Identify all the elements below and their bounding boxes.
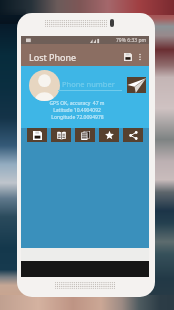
staticText: 6:33 pm [126, 37, 147, 44]
button[interactable]: Save [27, 128, 47, 142]
staticText: Phone number [62, 79, 115, 89]
button[interactable]: Send [127, 77, 146, 93]
button[interactable]: History [75, 128, 95, 142]
button[interactable]: Contact photo [29, 70, 60, 101]
button[interactable]: Share [123, 128, 143, 142]
button[interactable]: Map [51, 128, 71, 142]
button[interactable]: More options [134, 51, 145, 62]
staticText: 79% [116, 37, 126, 44]
button[interactable]: Favorite [99, 128, 119, 142]
staticText: Latitude 10.4904092 [53, 107, 101, 114]
staticText: Longitude 72.0094978 [51, 114, 104, 121]
staticText: Lost Phone [29, 51, 77, 63]
staticText: GPS OK, accuracy 47 m [49, 100, 105, 107]
button[interactable]: Save [121, 50, 134, 63]
